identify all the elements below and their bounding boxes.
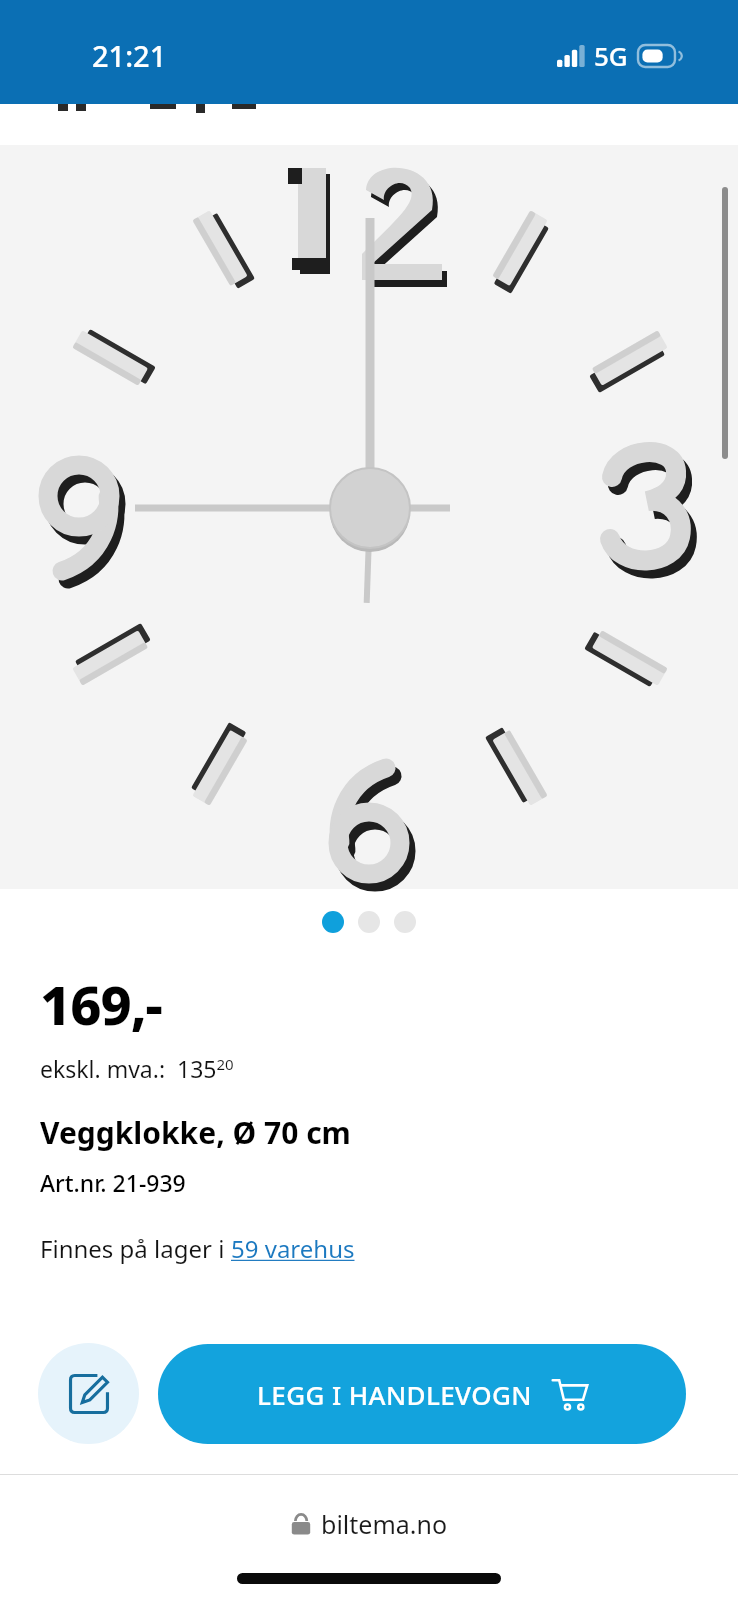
staticText: Finnes på lager i [40, 1232, 231, 1265]
button[interactable]: LEGG I HANDLEVOGN [158, 1344, 686, 1444]
staticText: LEGG I HANDLEVOGN [257, 1377, 532, 1412]
button[interactable]: biltema.no [291, 1507, 448, 1541]
button[interactable]: 59 varehus [231, 1232, 355, 1265]
staticText: 5G [594, 38, 628, 73]
staticText: biltema.no [321, 1507, 448, 1541]
button[interactable] [358, 911, 380, 933]
staticText: Veggklokke, Ø 70 cm [40, 1112, 351, 1153]
staticText: 21:21 [92, 36, 167, 75]
staticText: 59 varehus [231, 1232, 355, 1265]
button[interactable] [322, 911, 344, 933]
staticText: Art.nr. 21-939 [40, 1167, 186, 1198]
button[interactable]: Rediger [38, 1343, 139, 1444]
staticText: ekskl. mva.: 13520 [40, 1053, 234, 1084]
button[interactable] [394, 911, 416, 933]
staticText: 169,- [40, 967, 162, 1041]
